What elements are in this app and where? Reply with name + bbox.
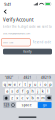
button[interactable]: d — [15, 88, 20, 94]
button[interactable]: t — [23, 81, 27, 87]
staticText: j — [37, 88, 38, 94]
button[interactable]: u — [33, 81, 37, 87]
button[interactable]: j — [35, 88, 40, 94]
staticText: Verify — [23, 49, 32, 54]
button[interactable]: w — [7, 81, 12, 87]
button[interactable]: z — [10, 95, 14, 101]
button[interactable]: 48219 — [37, 74, 55, 81]
button[interactable]: a — [5, 88, 9, 94]
button[interactable]: p — [48, 81, 53, 87]
staticText: 9:41 — [4, 1, 11, 7]
staticText: n — [37, 95, 39, 100]
staticText: Enter the 6-digit code we sent to — [3, 25, 52, 29]
button[interactable]: r — [18, 81, 22, 87]
button[interactable]: x — [15, 95, 20, 101]
staticText: t — [24, 82, 25, 87]
staticText: go — [43, 103, 47, 107]
staticText: f — [22, 88, 23, 94]
staticText: “482” — [5, 75, 13, 80]
staticText: 4821 — [23, 75, 31, 80]
button[interactable]: o — [43, 81, 47, 87]
button[interactable]: k — [40, 88, 45, 94]
button[interactable]: space — [16, 102, 37, 108]
button[interactable]: c — [20, 95, 25, 101]
button[interactable]: b — [30, 95, 35, 101]
staticText: v — [26, 95, 28, 100]
staticText: a — [6, 88, 8, 94]
button[interactable]: Resend code — [30, 38, 54, 46]
staticText: i — [40, 82, 41, 87]
staticText: p — [49, 82, 51, 87]
staticText: 48219 — [41, 75, 51, 80]
button[interactable]: y — [28, 81, 32, 87]
staticText: s — [11, 88, 13, 94]
button[interactable]: q — [2, 81, 7, 87]
button[interactable]: go — [38, 102, 52, 108]
button[interactable]: Shift — [3, 95, 9, 101]
button[interactable]: h — [30, 88, 35, 94]
staticText: l — [47, 88, 48, 94]
staticText: u — [34, 82, 36, 87]
staticText: 123 — [4, 103, 10, 107]
button[interactable]: i — [38, 81, 42, 87]
staticText: d — [16, 88, 18, 94]
staticText: h — [32, 88, 34, 94]
button[interactable]: 4821 — [18, 74, 36, 81]
staticText: space — [22, 103, 32, 107]
button[interactable]: g — [25, 88, 30, 94]
button[interactable]: “482” — [0, 74, 18, 81]
staticText: Verify Account — [3, 17, 34, 23]
staticText: x — [16, 95, 18, 100]
staticText: z — [11, 95, 13, 100]
staticText: r — [19, 82, 21, 87]
button[interactable]: s — [10, 88, 14, 94]
button[interactable]: Delete — [46, 95, 52, 101]
staticText: m — [41, 95, 44, 100]
button[interactable]: m — [40, 95, 45, 101]
staticText: o — [44, 82, 46, 87]
button[interactable]: e — [13, 81, 17, 87]
button[interactable]: 123 — [3, 102, 10, 108]
staticText: e — [14, 82, 16, 87]
staticText: b — [32, 95, 34, 100]
button[interactable]: Verify — [3, 49, 52, 54]
button[interactable]: Back — [0, 8, 10, 15]
staticText: g — [26, 88, 28, 94]
staticText: Resend code — [32, 40, 51, 44]
staticText: Enter code — [3, 41, 13, 44]
button[interactable]: f — [20, 88, 25, 94]
button[interactable]: v — [25, 95, 30, 101]
staticText: c — [21, 95, 23, 100]
staticText: alex.morgan@example.com — [3, 32, 30, 35]
button[interactable]: Emoji — [10, 102, 16, 108]
staticText: k — [42, 88, 44, 94]
button[interactable]: n — [35, 95, 40, 101]
staticText: w — [8, 82, 11, 87]
button[interactable]: l — [46, 88, 50, 94]
staticText: y — [29, 82, 31, 87]
staticText: q — [4, 82, 6, 87]
